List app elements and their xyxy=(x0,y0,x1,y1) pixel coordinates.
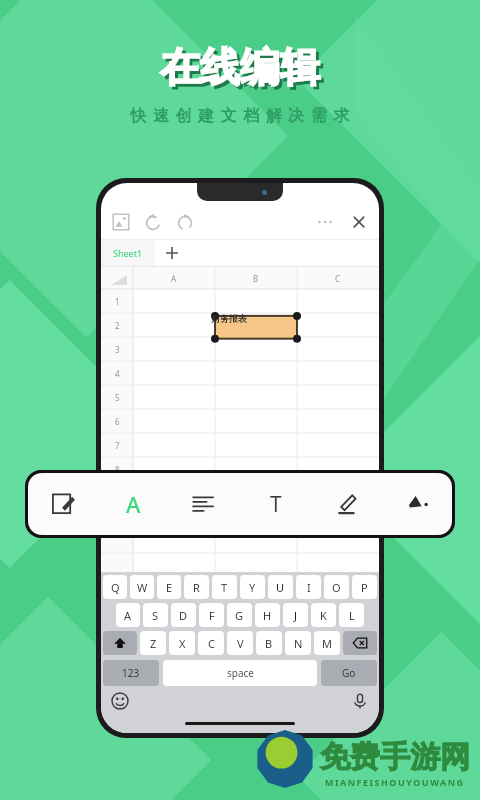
button[interactable]: Emoji xyxy=(111,692,129,710)
staticText: 1 xyxy=(115,296,120,307)
staticText: C xyxy=(335,273,341,284)
button[interactable]: Highlighter xyxy=(310,473,381,535)
staticText: Go xyxy=(342,666,356,680)
button[interactable]: space xyxy=(163,660,317,686)
button[interactable]: A xyxy=(116,603,140,627)
staticText: space xyxy=(227,666,254,680)
button[interactable]: Add sheet xyxy=(155,240,189,266)
staticText: X xyxy=(179,636,186,651)
staticText: 财务报表 xyxy=(211,313,247,324)
staticText: H xyxy=(263,608,272,623)
staticText: N xyxy=(294,636,303,651)
staticText: D xyxy=(179,608,188,623)
staticText: L xyxy=(349,608,355,623)
staticText: G xyxy=(235,608,244,623)
staticText: B xyxy=(265,636,273,651)
button[interactable]: Backspace xyxy=(343,631,377,655)
staticText: 3 xyxy=(115,344,120,355)
button[interactable]: B xyxy=(256,631,282,655)
staticText: B xyxy=(253,273,259,284)
staticText: P xyxy=(361,580,368,595)
staticText: S xyxy=(152,608,159,623)
button[interactable]: F xyxy=(199,603,224,627)
staticText: 2 xyxy=(115,320,120,331)
button[interactable]: Z xyxy=(140,631,166,655)
button[interactable]: M xyxy=(314,631,340,655)
staticText: A xyxy=(124,608,132,623)
button[interactable]: Undo xyxy=(143,212,163,232)
staticText: E xyxy=(166,580,173,595)
staticText: A xyxy=(126,489,141,519)
button[interactable]: I xyxy=(296,575,321,599)
button[interactable]: N xyxy=(285,631,311,655)
button[interactable]: P xyxy=(352,575,377,599)
staticText: T xyxy=(221,580,228,595)
staticText: K xyxy=(320,608,327,623)
staticText: 快 速 创 建 文 档 解 决 需 求 xyxy=(130,104,351,126)
button[interactable]: V xyxy=(227,631,253,655)
button[interactable]: Edit xyxy=(28,473,98,535)
button[interactable]: Insert image xyxy=(111,212,131,232)
staticText: Q xyxy=(111,580,120,595)
staticText: 免费手游网 xyxy=(320,738,470,776)
button[interactable]: D xyxy=(171,603,196,627)
button[interactable]: O xyxy=(324,575,349,599)
staticText: Z xyxy=(150,636,157,651)
button[interactable]: T xyxy=(212,575,237,599)
staticText: 5 xyxy=(115,392,120,403)
button[interactable]: J xyxy=(283,603,308,627)
staticText: C xyxy=(208,636,215,651)
button[interactable]: W xyxy=(130,575,154,599)
button[interactable]: Sheet1 xyxy=(101,240,155,266)
button[interactable]: G xyxy=(227,603,252,627)
staticText: U xyxy=(276,580,285,595)
button[interactable]: Close xyxy=(349,212,369,232)
button[interactable]: X xyxy=(169,631,195,655)
button[interactable]: R xyxy=(184,575,209,599)
button[interactable]: Text xyxy=(239,473,310,535)
button[interactable]: Voice input xyxy=(351,692,369,710)
staticText: F xyxy=(209,608,215,623)
button[interactable]: Y xyxy=(240,575,265,599)
staticText: O xyxy=(332,580,341,595)
button[interactable]: U xyxy=(268,575,293,599)
staticText: 7 xyxy=(115,440,120,451)
button[interactable]: Shift xyxy=(103,631,137,655)
staticText: 6 xyxy=(115,416,120,427)
button[interactable]: E xyxy=(157,575,181,599)
button[interactable]: Fill colour xyxy=(381,473,452,535)
staticText: 8 xyxy=(115,464,120,475)
button[interactable]: Redo xyxy=(175,212,195,232)
button[interactable]: 123 xyxy=(103,660,159,686)
staticText: I xyxy=(307,580,311,595)
staticText: 4 xyxy=(115,368,120,379)
staticText: W xyxy=(137,580,148,595)
button[interactable]: Q xyxy=(103,575,127,599)
button[interactable]: K xyxy=(311,603,336,627)
staticText: M xyxy=(322,636,332,651)
staticText: T xyxy=(270,490,282,519)
staticText: 123 xyxy=(122,666,140,680)
button[interactable]: Go xyxy=(321,660,377,686)
button[interactable]: More options xyxy=(315,212,335,232)
staticText: 在线编辑 xyxy=(160,42,320,92)
staticText: Y xyxy=(249,580,256,595)
staticText: A xyxy=(171,273,177,284)
button[interactable]: H xyxy=(255,603,280,627)
button[interactable]: C xyxy=(198,631,224,655)
staticText: 在线编辑 xyxy=(163,45,323,95)
staticText: MIANFEISHOUYOUWANG xyxy=(325,776,465,788)
button[interactable]: Align xyxy=(168,473,239,535)
staticText: J xyxy=(294,608,298,623)
staticText: V xyxy=(237,636,244,651)
staticText: Sheet1 xyxy=(113,247,143,259)
staticText: R xyxy=(193,580,200,595)
button[interactable]: Font colour xyxy=(98,473,168,535)
button[interactable]: S xyxy=(143,603,168,627)
button[interactable]: L xyxy=(339,603,364,627)
